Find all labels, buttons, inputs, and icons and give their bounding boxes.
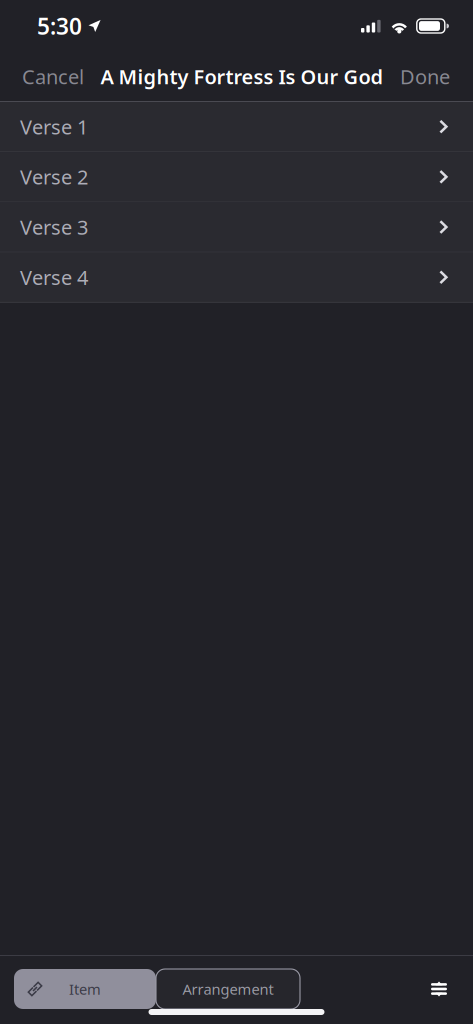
staticText: Verse 2	[20, 164, 88, 190]
staticText: Arrangement	[182, 979, 273, 999]
button[interactable]: Verse 1	[0, 102, 473, 152]
staticText: A Mighty Fortress Is Our God	[100, 63, 383, 90]
staticText: Done	[400, 63, 450, 90]
staticText: Verse 3	[20, 214, 88, 240]
staticText: Item	[69, 979, 101, 999]
button[interactable]: Verse 3	[0, 202, 473, 253]
button[interactable]: Cancel	[0, 52, 94, 101]
staticText: Verse 1	[20, 113, 88, 140]
staticText: Cancel	[22, 63, 84, 90]
button[interactable]: Verse 2	[0, 152, 473, 202]
button[interactable]: Item	[14, 969, 156, 1009]
staticText: Verse 4	[20, 264, 88, 291]
button[interactable]: Arrangement	[156, 969, 300, 1009]
button[interactable]: Done	[390, 52, 473, 101]
button[interactable]: Verse 4	[0, 253, 473, 303]
button[interactable]: Line spacing	[413, 967, 465, 1011]
staticText: 5:30	[37, 11, 82, 41]
